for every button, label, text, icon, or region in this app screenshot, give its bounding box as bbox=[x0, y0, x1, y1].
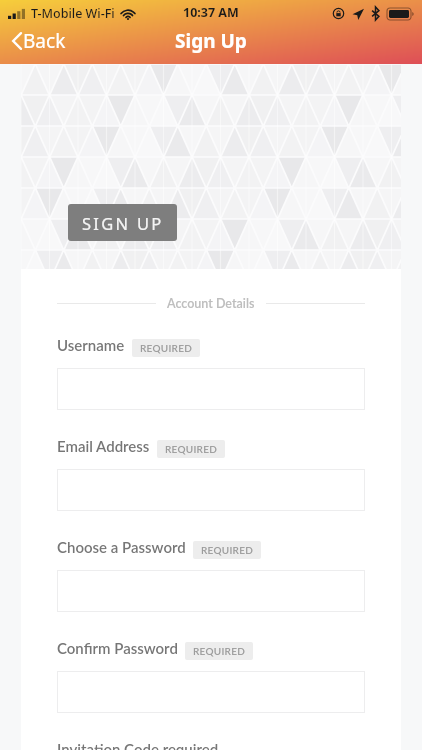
button[interactable] bbox=[57, 570, 365, 612]
staticText: Sign Up bbox=[175, 28, 247, 54]
button[interactable] bbox=[57, 368, 365, 410]
staticText: Confirm Password bbox=[57, 639, 178, 657]
button[interactable] bbox=[57, 469, 365, 511]
staticText: T-Mobile Wi-Fi bbox=[31, 5, 115, 22]
staticText: Username bbox=[57, 336, 125, 354]
staticText: 10:37 AM bbox=[183, 4, 239, 21]
button[interactable]: SIGN UP bbox=[68, 204, 177, 241]
staticText: REQUIRED bbox=[201, 544, 253, 556]
staticText: Back bbox=[23, 28, 66, 54]
staticText: REQUIRED bbox=[165, 443, 217, 455]
staticText: Invitation Code required bbox=[57, 740, 219, 750]
button[interactable] bbox=[57, 671, 365, 713]
staticText: Account Details bbox=[167, 296, 255, 311]
staticText: REQUIRED bbox=[140, 342, 192, 354]
button[interactable]: Back bbox=[6, 24, 74, 58]
staticText: Email Address bbox=[57, 437, 150, 455]
staticText: SIGN UP bbox=[82, 212, 164, 234]
staticText: REQUIRED bbox=[193, 645, 245, 657]
staticText: Choose a Password bbox=[57, 538, 186, 556]
